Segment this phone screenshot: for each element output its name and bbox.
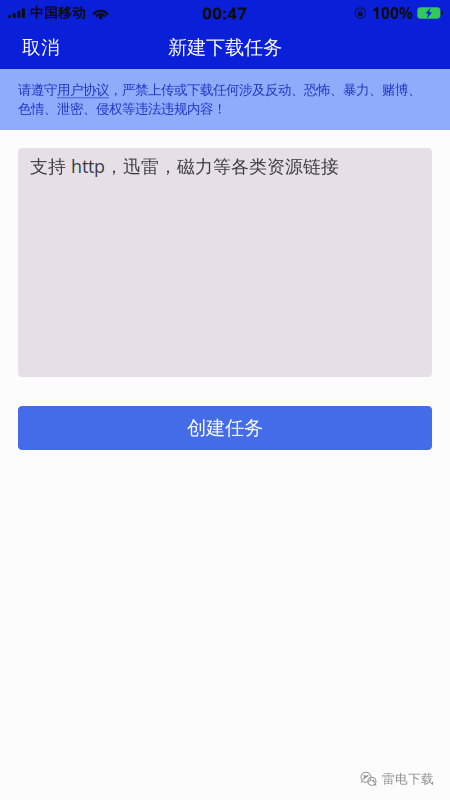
- staticText: 支持 http，迅雷，磁力等各类资源链接: [30, 154, 339, 178]
- button[interactable]: 用户协议: [56, 82, 108, 98]
- staticText: 中国移动: [30, 4, 86, 21]
- staticText: 100%: [372, 3, 413, 23]
- staticText: 请遵守用户协议，严禁上传或下载任何涉及反动、恐怖、暴力、赌博、色情、泄密、侵权等…: [18, 81, 421, 117]
- button[interactable]: 创建任务: [18, 406, 432, 450]
- button[interactable]: 支持 http，迅雷，磁力等各类资源链接: [18, 148, 432, 377]
- staticText: 创建任务: [187, 416, 263, 440]
- staticText: 雷电下载: [382, 771, 434, 787]
- staticText: 取消: [22, 36, 60, 59]
- staticText: 00:47: [202, 2, 247, 24]
- staticText: 新建下载任务: [168, 35, 282, 60]
- button[interactable]: 取消: [0, 25, 74, 70]
